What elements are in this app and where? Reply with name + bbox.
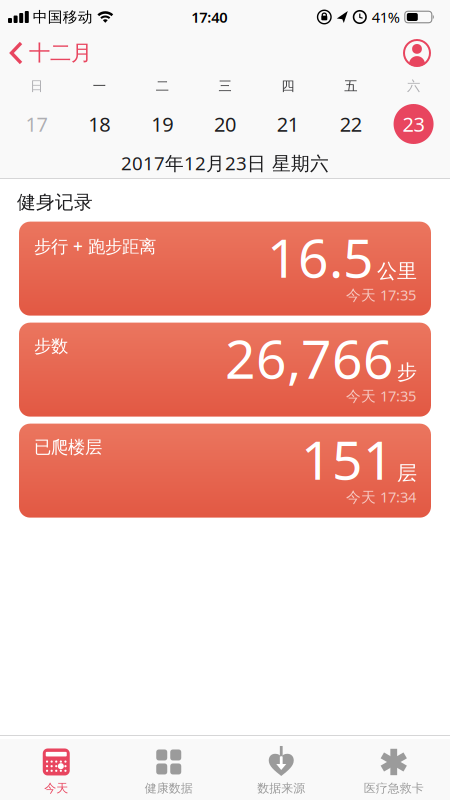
staticText: 一 — [93, 78, 106, 94]
staticText: 今天 — [44, 781, 68, 796]
staticText: 公里 — [377, 259, 417, 283]
staticText: 层 — [397, 461, 417, 485]
button[interactable]: 今天 — [0, 736, 112, 796]
staticText: 16.5 — [267, 222, 374, 292]
staticText: 四 — [281, 78, 294, 94]
staticText: 今天 17:35 — [346, 386, 416, 406]
staticText: 二 — [156, 78, 169, 94]
button[interactable]: 十二月 — [0, 40, 92, 66]
button[interactable]: 18 — [68, 111, 131, 137]
button[interactable]: 步数 — [19, 323, 431, 417]
button[interactable]: 21 — [256, 111, 319, 137]
button[interactable]: 20 — [194, 111, 256, 137]
staticText: 步 — [397, 360, 417, 384]
staticText: 21 — [277, 111, 299, 137]
staticText: 2017年12月23日 星期六 — [121, 151, 329, 175]
button[interactable]: 19 — [131, 111, 194, 137]
button[interactable]: 个人资料 — [403, 39, 450, 67]
staticText: 今天 17:34 — [346, 487, 416, 507]
staticText: 五 — [344, 78, 357, 94]
staticText: 23 — [403, 111, 425, 137]
staticText: 日 — [30, 78, 43, 94]
staticText: 今天 17:35 — [346, 285, 416, 305]
button[interactable]: 数据来源 — [225, 736, 337, 796]
staticText: 41% — [372, 7, 400, 27]
button[interactable]: 步行 + 跑步距离 — [19, 222, 431, 316]
staticText: 六 — [407, 78, 420, 94]
staticText: 17 — [25, 111, 47, 137]
staticText: 数据来源 — [257, 781, 305, 796]
staticText: 健身记录 — [17, 191, 93, 214]
staticText: 中国移动 — [33, 8, 93, 26]
button[interactable]: 医疗急救卡 — [337, 736, 450, 796]
staticText: 22 — [340, 111, 362, 137]
button[interactable]: 已爬楼层 — [19, 424, 431, 518]
staticText: 健康数据 — [145, 781, 193, 796]
staticText: 步数 — [34, 336, 68, 357]
staticText: 17:40 — [191, 7, 227, 27]
staticText: 20 — [214, 111, 236, 137]
staticText: 151 — [301, 424, 394, 494]
button[interactable]: 22 — [319, 111, 382, 137]
staticText: 18 — [88, 111, 110, 137]
button[interactable]: 23 — [382, 104, 445, 144]
staticText: 十二月 — [29, 40, 92, 66]
staticText: 26,766 — [225, 323, 394, 393]
staticText: 三 — [218, 78, 231, 94]
staticText: 已爬楼层 — [34, 437, 102, 458]
staticText: 步行 + 跑步距离 — [34, 235, 156, 258]
staticText: 医疗急救卡 — [364, 781, 424, 796]
button[interactable]: 17 — [5, 111, 68, 137]
button[interactable]: 健康数据 — [112, 736, 225, 796]
staticText: 19 — [151, 111, 173, 137]
